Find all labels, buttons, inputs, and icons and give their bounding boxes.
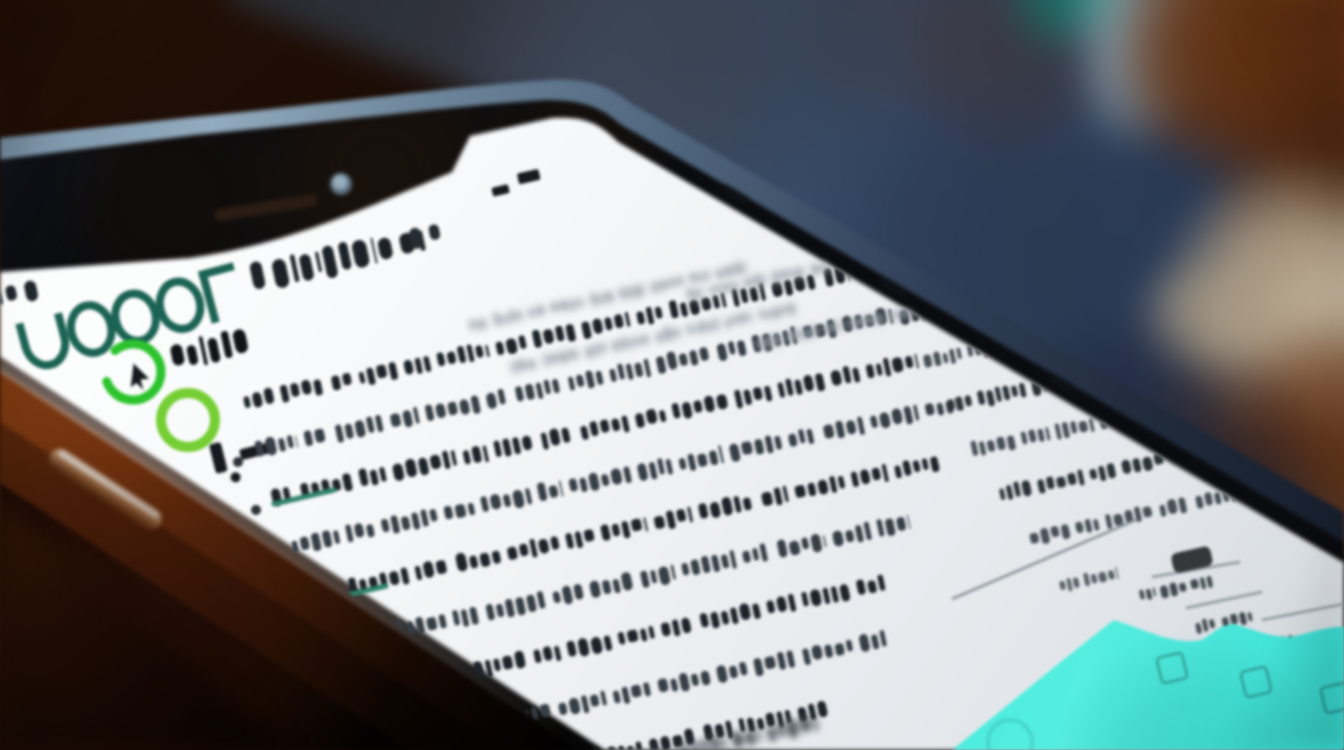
button[interactable]: Voodoo app logo xyxy=(18,250,268,380)
button[interactable]: Task complete xyxy=(155,388,230,458)
button[interactable]: Toggle switch xyxy=(1150,535,1260,590)
button[interactable]: Teal summary card xyxy=(930,600,1344,750)
button[interactable]: Document app on phone xyxy=(0,0,1344,750)
button[interactable]: Refresh status xyxy=(100,340,190,410)
button[interactable]: Document body text xyxy=(230,370,990,750)
